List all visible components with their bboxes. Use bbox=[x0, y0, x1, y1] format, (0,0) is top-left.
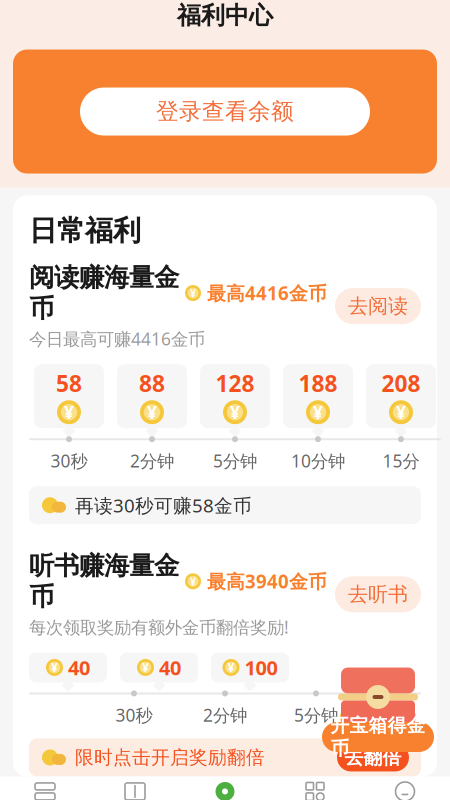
button[interactable]: 登录查看余额 bbox=[13, 49, 437, 173]
staticText: ¥ bbox=[190, 286, 196, 300]
staticText: 100 bbox=[244, 654, 277, 681]
button[interactable]: 去翻倍 bbox=[337, 743, 409, 771]
button[interactable]: 去阅读 bbox=[335, 288, 421, 324]
staticText: 登录查看余额 bbox=[156, 98, 294, 125]
staticText: ¥ bbox=[230, 401, 240, 424]
staticText: 88 bbox=[139, 368, 165, 398]
staticText: 40 bbox=[159, 654, 181, 681]
staticText: 去翻倍 bbox=[344, 746, 401, 769]
button[interactable]: 书城 bbox=[90, 778, 180, 800]
staticText: 福利中心 bbox=[177, 1, 273, 30]
button[interactable]: 书架 bbox=[0, 778, 90, 800]
staticText: 10分钟 bbox=[291, 449, 345, 472]
staticText: ¥ bbox=[64, 401, 74, 424]
staticText: 再读30秒可赚58金币 bbox=[75, 493, 252, 518]
staticText: ¥ bbox=[400, 706, 409, 728]
staticText: ¥ bbox=[346, 706, 355, 728]
button[interactable]: 我的 bbox=[360, 778, 450, 800]
staticText: ¥ bbox=[51, 659, 58, 675]
staticText: 128 bbox=[215, 368, 254, 398]
staticText: 58 bbox=[56, 368, 82, 398]
staticText: ¥ bbox=[190, 574, 196, 588]
staticText: 5分钟 bbox=[213, 449, 257, 472]
staticText: 30秒 bbox=[50, 449, 87, 472]
button[interactable]: 福利 bbox=[180, 778, 270, 800]
staticText: 限时点击开启奖励翻倍 bbox=[75, 746, 265, 769]
staticText: 15分 bbox=[382, 449, 419, 472]
staticText: 每次领取奖励有额外金币翻倍奖励! bbox=[29, 615, 289, 638]
button[interactable]: 去听书 bbox=[335, 576, 421, 612]
staticText: 188 bbox=[298, 368, 337, 398]
staticText: 阅读赚海量金币 bbox=[29, 262, 179, 324]
button[interactable]: 开宝箱得金币 bbox=[322, 662, 434, 752]
staticText: ¥ bbox=[396, 401, 406, 424]
staticText: 今日最高可赚4416金币 bbox=[29, 327, 205, 350]
button[interactable]: 分类 bbox=[270, 778, 360, 800]
staticText: 去听书 bbox=[348, 582, 408, 607]
staticText: 208 bbox=[381, 368, 420, 398]
staticText: ¥ bbox=[147, 401, 157, 424]
staticText: ¥ bbox=[227, 659, 234, 675]
staticText: 2分钟 bbox=[203, 703, 247, 726]
staticText: 5分钟 bbox=[294, 703, 338, 726]
staticText: 去阅读 bbox=[348, 294, 408, 318]
staticText: 2分钟 bbox=[130, 449, 174, 472]
staticText: 日常福利 bbox=[29, 213, 141, 248]
staticText: 30秒 bbox=[115, 703, 152, 726]
staticText: 听书赚海量金币 bbox=[29, 550, 179, 612]
staticText: 开宝箱得金币 bbox=[330, 714, 425, 760]
staticText: ¥ bbox=[313, 401, 323, 424]
staticText: 最高4416金币 bbox=[207, 281, 327, 305]
staticText: 最高3940金币 bbox=[207, 569, 327, 594]
staticText: 40 bbox=[68, 654, 90, 681]
staticText: ¥ bbox=[142, 659, 149, 675]
